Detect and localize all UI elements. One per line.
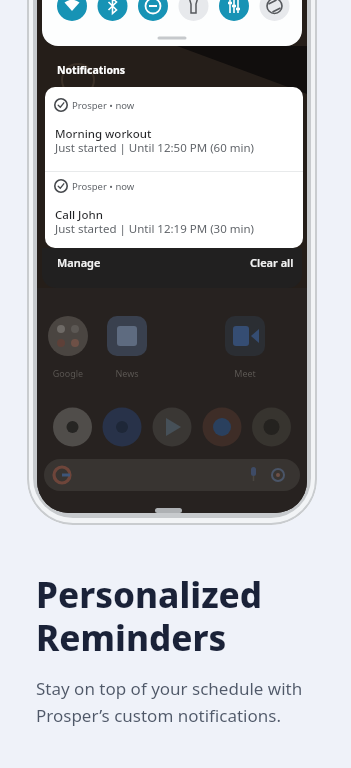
- button[interactable]: Manage: [57, 255, 101, 270]
- staticText: Google: [49, 367, 87, 379]
- staticText: Call John: [55, 207, 103, 223]
- staticText: Notifications: [57, 63, 126, 77]
- staticText: News: [108, 367, 146, 379]
- staticText: Just started | Until 12:50 PM (60 min): [55, 140, 255, 156]
- staticText: Just started | Until 12:19 PM (30 min): [55, 221, 255, 237]
- staticText: Meet: [226, 367, 264, 379]
- staticText: Reminders: [36, 614, 227, 662]
- button[interactable]: Prosper • now: [45, 87, 303, 248]
- button[interactable]: Clear all: [250, 255, 294, 270]
- staticText: Morning workout: [55, 126, 152, 142]
- staticText: Prosper • now: [72, 99, 135, 112]
- staticText: Prosper • now: [72, 180, 135, 193]
- staticText: Stay on top of your schedule with Prospe…: [36, 677, 303, 727]
- staticText: Personalized: [36, 571, 263, 619]
- button[interactable]: [44, 459, 300, 491]
